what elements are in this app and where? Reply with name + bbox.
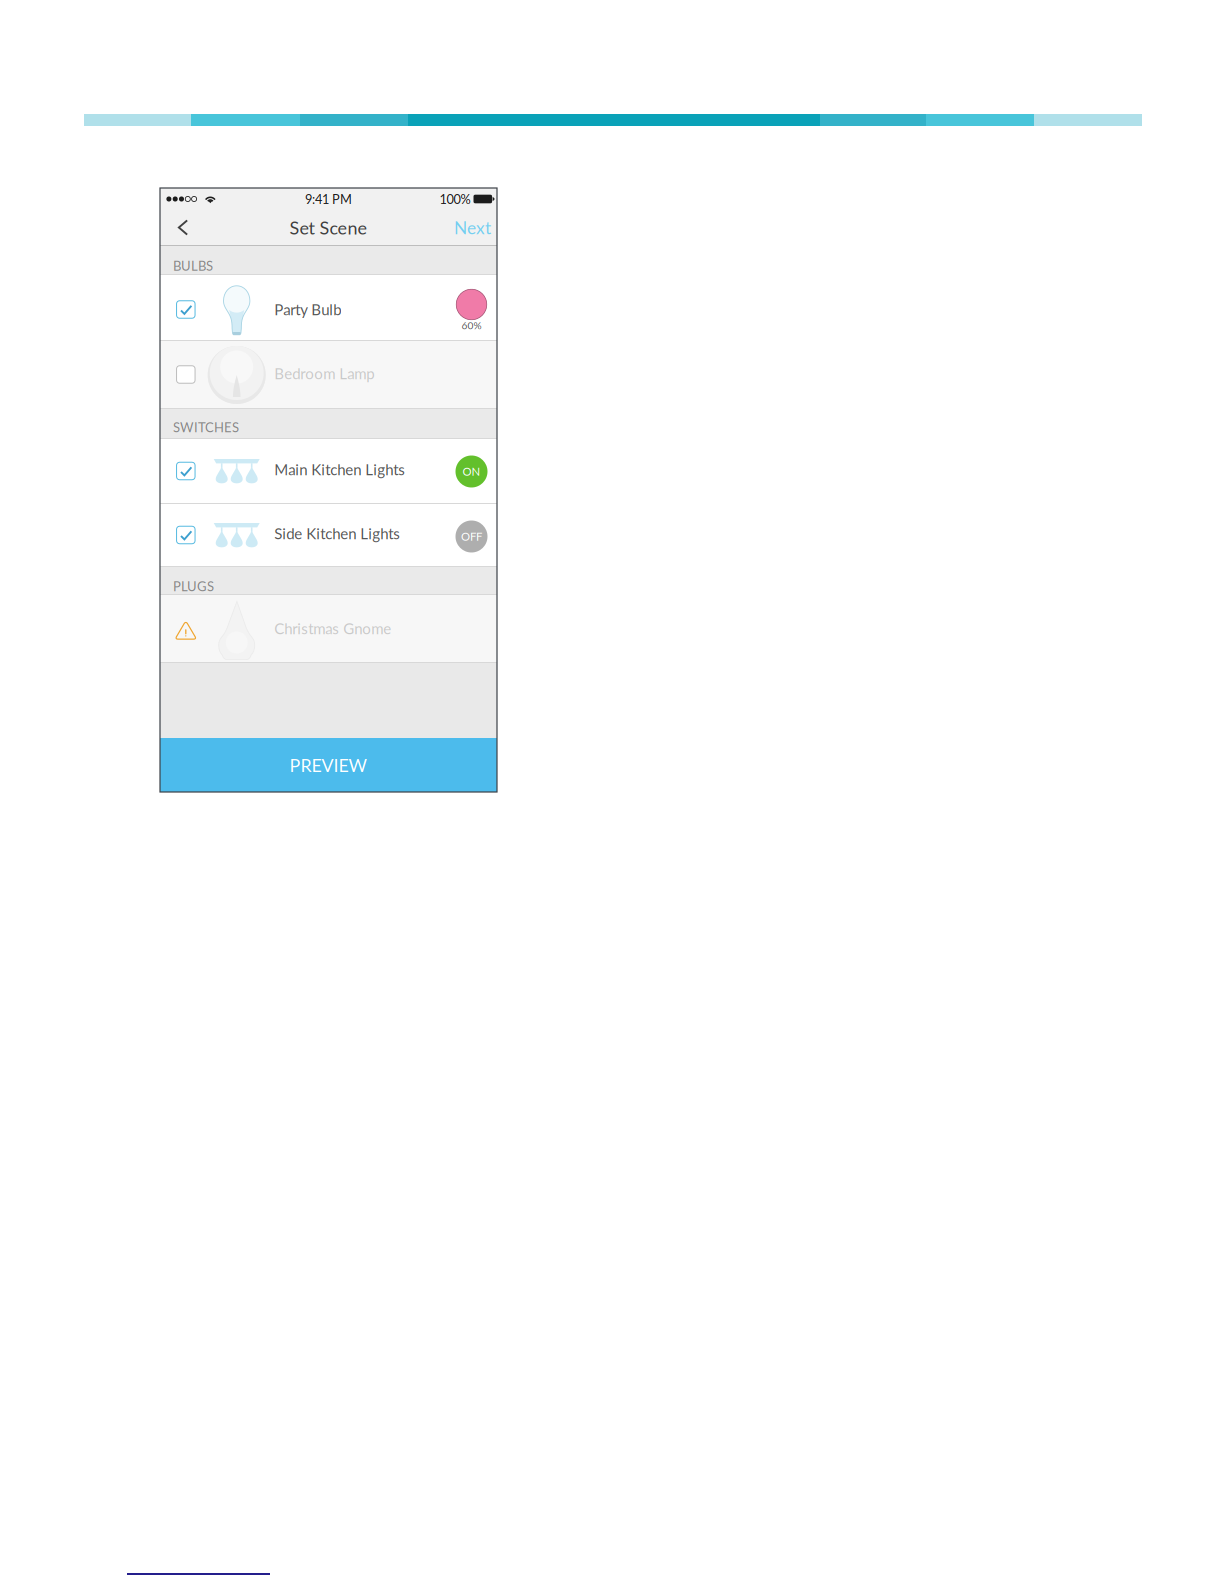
staticText: Christmas Gnome [274,619,391,638]
button[interactable]: Party Bulb [160,275,497,341]
button[interactable]: PREVIEW [160,738,497,792]
staticText: ON [462,464,480,478]
button[interactable]: Bedroom Lamp [160,341,497,409]
staticText: PLUGS [173,578,214,594]
staticText: 9:41 PM [305,191,352,207]
staticText: BULBS [173,258,213,273]
button[interactable]: Side Kitchen Lights [160,504,497,567]
staticText: Side Kitchen Lights [274,524,400,543]
button[interactable]: Back [165,210,201,245]
staticText: Next [454,217,491,238]
staticText: Party Bulb [274,300,341,319]
staticText: Set Scene [289,217,367,238]
button[interactable]: Next [447,210,491,245]
button[interactable]: Christmas Gnome [160,595,497,663]
staticText: OFF [461,529,482,543]
staticText: PREVIEW [289,754,367,776]
staticText: 100% [439,191,470,207]
staticText: SWITCHES [173,419,239,435]
staticText: Main Kitchen Lights [274,460,405,479]
button[interactable]: Main Kitchen Lights [160,439,497,504]
staticText: 60% [461,319,481,331]
staticText: Bedroom Lamp [274,364,374,383]
